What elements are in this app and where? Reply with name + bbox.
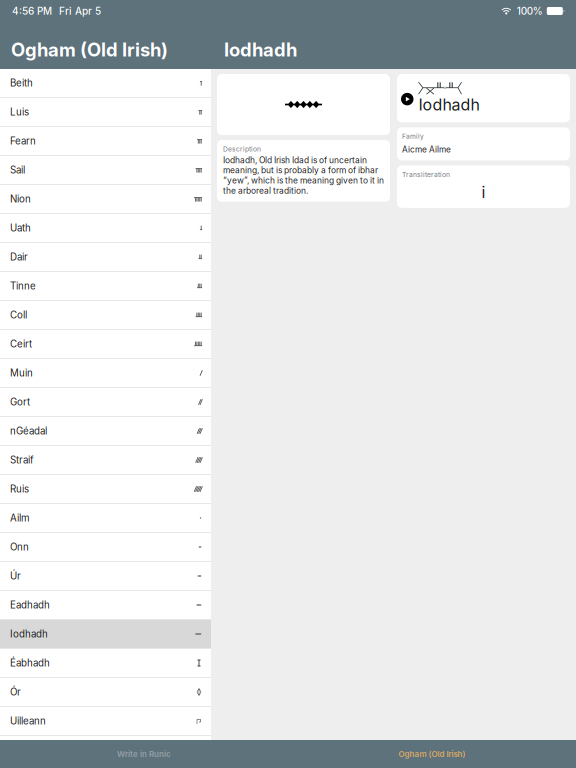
staticText: Sail xyxy=(10,164,25,176)
button[interactable]: Tinne xyxy=(0,272,211,301)
staticText: 4:56 PM xyxy=(12,5,52,17)
staticText: Tinne xyxy=(10,280,36,292)
button[interactable]: Luis xyxy=(0,98,211,127)
button[interactable]: Uilleann xyxy=(0,707,211,736)
button[interactable]: Onn xyxy=(0,533,211,562)
staticText: Uath xyxy=(10,222,31,234)
button[interactable]: Ogham (Old Irish) xyxy=(288,740,576,768)
button[interactable]: Coll xyxy=(0,301,211,330)
staticText: Description xyxy=(223,145,261,153)
staticText: Ogham (Old Irish) xyxy=(11,39,168,61)
staticText: Iodhadh xyxy=(224,39,297,61)
staticText: Ogham (Old Irish) xyxy=(398,749,465,759)
staticText: Fri Apr 5 xyxy=(59,5,101,17)
staticText: Luis xyxy=(10,106,29,118)
button[interactable]: Fearn xyxy=(0,127,211,156)
staticText: Ceirt xyxy=(10,338,32,350)
staticText: Muin xyxy=(10,367,33,379)
staticText: Aicme Ailme xyxy=(402,144,451,154)
button[interactable]: Gort xyxy=(0,388,211,417)
button[interactable]: Úr xyxy=(0,562,211,591)
button[interactable]: Dair xyxy=(0,243,211,272)
button[interactable]: Uath xyxy=(0,214,211,243)
staticText: 100% xyxy=(517,5,543,17)
staticText: Iodhadh, Old Irish Idad is of uncertain … xyxy=(223,155,384,196)
staticText: Write in Runic xyxy=(117,749,171,759)
button[interactable]: Nion xyxy=(0,185,211,214)
staticText: Nion xyxy=(10,193,31,205)
staticText: Éabhadh xyxy=(10,657,50,669)
button[interactable]: Ceirt xyxy=(0,330,211,359)
button[interactable]: Éabhadh xyxy=(0,649,211,678)
staticText: Eadhadh xyxy=(10,599,50,611)
staticText: nGéadal xyxy=(10,425,47,437)
staticText: Fearn xyxy=(10,135,36,147)
button[interactable]: Ruis xyxy=(0,475,211,504)
staticText: Úr xyxy=(10,570,21,582)
staticText: Coll xyxy=(10,309,27,321)
staticText: Ailm xyxy=(10,512,30,524)
staticText: Transliteration xyxy=(402,170,450,178)
button[interactable]: Ór xyxy=(0,678,211,707)
button[interactable]: Eadhadh xyxy=(0,591,211,620)
button[interactable]: Straif xyxy=(0,446,211,475)
button[interactable]: nGéadal xyxy=(0,417,211,446)
staticText: Gort xyxy=(10,396,30,408)
staticText: i xyxy=(481,182,485,202)
button[interactable]: Write in Runic xyxy=(0,740,288,768)
staticText: Uilleann xyxy=(10,715,46,727)
button[interactable]: Iodhadh xyxy=(397,74,570,122)
staticText: Straif xyxy=(10,454,34,466)
staticText: Dair xyxy=(10,251,28,263)
button[interactable]: Muin xyxy=(0,359,211,388)
button[interactable]: Ailm xyxy=(0,504,211,533)
staticText: Beith xyxy=(10,77,33,89)
button[interactable]: Sail xyxy=(0,156,211,185)
staticText: Ruis xyxy=(10,483,29,495)
staticText: Family xyxy=(402,132,424,140)
staticText: Iodhadh xyxy=(10,628,48,640)
staticText: Ór xyxy=(10,686,21,698)
button[interactable]: Beith xyxy=(0,69,211,98)
staticText: Onn xyxy=(10,541,29,553)
staticText: Iodhadh xyxy=(418,95,479,114)
button[interactable]: Iodhadh xyxy=(0,620,211,649)
